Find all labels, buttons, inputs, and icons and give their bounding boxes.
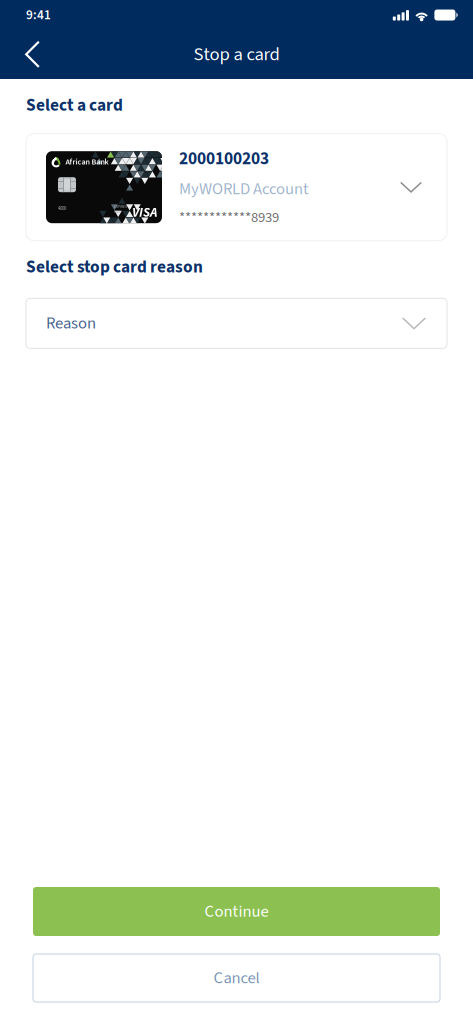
button[interactable]: Back: [0, 30, 56, 79]
staticText: Continue: [204, 900, 268, 923]
staticText: 2000100203: [179, 146, 269, 171]
button[interactable]: Continue: [0, 887, 473, 936]
staticText: 4000: [58, 205, 66, 212]
staticText: Stop a card: [193, 41, 279, 68]
staticText: Select a card: [26, 93, 123, 118]
staticText: 9:41: [26, 5, 51, 24]
button[interactable]: Reason: [0, 279, 473, 348]
staticText: VISA: [132, 203, 157, 222]
staticText: EXPIRES END: [114, 204, 127, 215]
staticText: ************8939: [179, 207, 279, 228]
staticText: Select stop card reason: [26, 255, 203, 279]
staticText: MyWORLD Account: [179, 177, 309, 201]
button[interactable]: African Bank: [0, 118, 473, 241]
staticText: Cancel: [213, 966, 259, 990]
staticText: African Bank: [65, 156, 108, 168]
button[interactable]: Cancel: [0, 936, 473, 1024]
staticText: Reason: [46, 311, 96, 335]
